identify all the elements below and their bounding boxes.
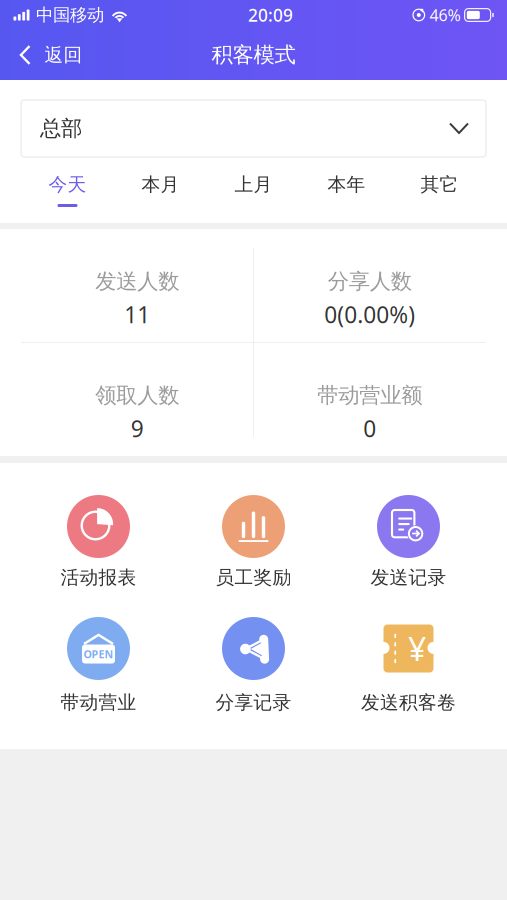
staticText: 员工奖励 — [215, 566, 291, 589]
staticText: 46% — [430, 4, 461, 26]
staticText: OPEN — [83, 647, 113, 661]
staticText: 发送记录 — [370, 566, 446, 589]
staticText: 上月 — [234, 173, 272, 196]
staticText: 领取人数 — [95, 382, 179, 409]
staticText: 9 — [131, 413, 144, 443]
button[interactable]: 今天 — [21, 157, 114, 223]
staticText: 11 — [124, 299, 150, 329]
button[interactable]: 发送记录 — [331, 495, 486, 587]
button[interactable]: 本年 — [300, 157, 393, 223]
staticText: 本年 — [327, 173, 365, 196]
staticText: 其它 — [420, 173, 458, 196]
button[interactable]: 上月 — [207, 157, 300, 223]
staticText: 中国移动 — [36, 4, 104, 26]
staticText: 带动营业额 — [317, 382, 422, 409]
staticText: 分享记录 — [215, 691, 291, 714]
button[interactable]: 其它 — [393, 157, 486, 223]
button[interactable]: 总部 — [21, 100, 486, 157]
staticText: 0(0.00%) — [324, 299, 415, 329]
button[interactable]: 返回 — [0, 30, 96, 80]
staticText: 本月 — [141, 173, 179, 196]
button[interactable]: 活动报表 — [21, 495, 176, 587]
button[interactable]: 分享记录 — [176, 617, 331, 712]
button[interactable]: 本月 — [114, 157, 207, 223]
staticText: 返回 — [44, 43, 82, 66]
staticText: 积客模式 — [211, 42, 295, 68]
staticText: 活动报表 — [60, 566, 136, 589]
button[interactable]: 员工奖励 — [176, 495, 331, 587]
staticText: 带动营业 — [60, 691, 136, 714]
staticText: 20:09 — [248, 3, 293, 26]
staticText: 总部 — [40, 115, 82, 142]
button[interactable]: ¥ — [331, 617, 486, 712]
button[interactable]: OPEN — [21, 617, 176, 712]
staticText: 发送积客卷 — [361, 691, 456, 714]
staticText: 今天 — [48, 173, 86, 196]
staticText: ¥ — [408, 627, 426, 670]
staticText: 0 — [363, 413, 376, 443]
staticText: 发送人数 — [95, 268, 179, 295]
staticText: 分享人数 — [328, 268, 412, 295]
